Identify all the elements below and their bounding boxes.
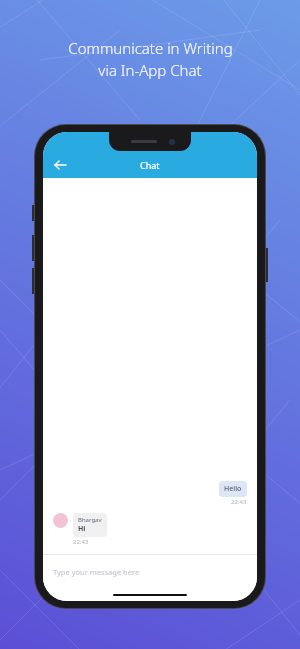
staticText: Hello [224,484,242,494]
button[interactable]: Type your message here [43,555,257,589]
staticText: Communicate in Writing [68,38,233,58]
staticText: Chat [140,159,160,171]
staticText: 22:43 [73,538,89,546]
button[interactable]: Bhargav [73,513,107,537]
staticText: Hi [78,524,86,534]
staticText: Bhargav [78,516,102,524]
staticText: 22:43 [231,498,247,506]
staticText: Type your message here [53,567,140,577]
button[interactable]: Back [49,154,71,176]
button[interactable]: Hello [219,481,247,497]
staticText: via In-App Chat [98,60,202,80]
